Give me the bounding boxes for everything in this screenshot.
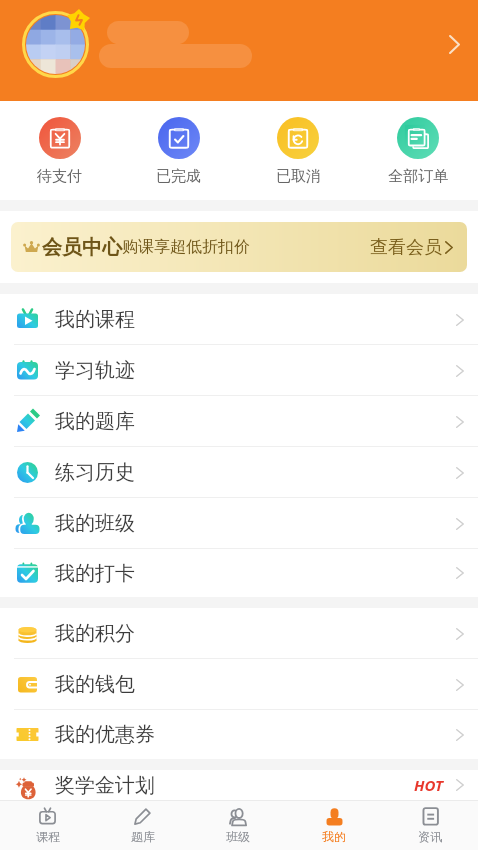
button[interactable]: 练习历史 xyxy=(0,447,478,498)
button[interactable]: 已取消 xyxy=(238,117,358,186)
button[interactable]: 待支付 xyxy=(0,117,119,186)
staticText: 我的 xyxy=(322,829,346,844)
button[interactable]: 奖学金计划 xyxy=(0,770,478,800)
staticText: 我的钱包 xyxy=(55,672,135,697)
button[interactable]: 我的积分 xyxy=(0,608,478,659)
button[interactable]: 我的班级 xyxy=(0,498,478,549)
staticText: 奖学金计划 xyxy=(55,773,155,798)
staticText: 我的班级 xyxy=(55,511,135,536)
staticText: 资讯 xyxy=(418,829,442,844)
staticText: 查看会员 xyxy=(370,236,442,259)
staticText: 题库 xyxy=(131,829,155,844)
staticText: 我的积分 xyxy=(55,621,135,646)
button[interactable]: 会员中心 xyxy=(11,222,467,272)
button[interactable]: 班级 xyxy=(190,800,286,850)
staticText: 我的优惠券 xyxy=(55,722,155,747)
button[interactable]: 题库 xyxy=(95,800,190,850)
button[interactable]: 课程 xyxy=(0,800,95,850)
staticText: 会员中心 xyxy=(42,235,122,260)
button[interactable]: 我的打卡 xyxy=(0,549,478,597)
staticText: 我的课程 xyxy=(55,307,135,332)
button[interactable]: 我的 xyxy=(286,800,382,850)
button[interactable]: 已完成 xyxy=(119,117,238,186)
staticText: 已完成 xyxy=(156,167,201,186)
staticText: 我的打卡 xyxy=(55,561,135,586)
staticText: 学习轨迹 xyxy=(55,358,135,383)
staticText: 练习历史 xyxy=(55,460,135,485)
button[interactable]: 我的课程 xyxy=(0,294,478,345)
button[interactable]: 我的钱包 xyxy=(0,659,478,710)
staticText: 我的题库 xyxy=(55,409,135,434)
staticText: 待支付 xyxy=(37,167,82,186)
button[interactable]: 资讯 xyxy=(382,800,478,850)
button[interactable]: Profile detail xyxy=(449,35,460,54)
staticText: 购课享超低折扣价 xyxy=(122,237,250,257)
staticText: HOT xyxy=(414,775,444,795)
button[interactable]: 学习轨迹 xyxy=(0,345,478,396)
button[interactable]: 我的题库 xyxy=(0,396,478,447)
button[interactable]: 我的优惠券 xyxy=(0,710,478,759)
staticText: 全部订单 xyxy=(388,167,448,186)
button[interactable]: 全部订单 xyxy=(358,117,478,186)
staticText: 已取消 xyxy=(276,167,321,186)
staticText: 班级 xyxy=(226,829,250,844)
staticText: 课程 xyxy=(36,829,60,844)
